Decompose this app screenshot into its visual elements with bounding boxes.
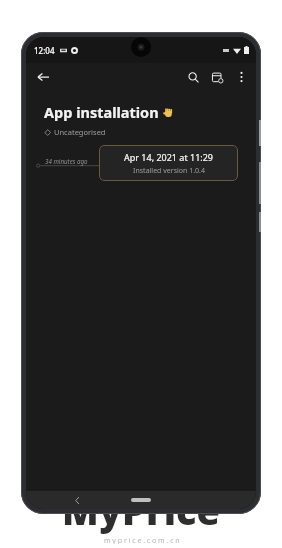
staticText: Apr 14, 2021 at 11:29 bbox=[124, 151, 213, 163]
staticText: 12:04 bbox=[34, 45, 55, 56]
button[interactable]: Apr 14, 2021 at 11:29 bbox=[99, 145, 238, 181]
button[interactable]: Back bbox=[70, 493, 84, 507]
button[interactable]: Back bbox=[32, 66, 54, 88]
staticText: MyPrice bbox=[62, 484, 221, 536]
staticText: Uncategorised bbox=[54, 127, 106, 137]
button[interactable]: More options bbox=[230, 66, 252, 88]
staticText: m y p r i c e . c o m . c n bbox=[104, 536, 180, 544]
staticText: App installation bbox=[44, 102, 159, 122]
staticText: Installed version 1.0.4 bbox=[133, 166, 205, 176]
button[interactable]: Search bbox=[182, 66, 204, 88]
button[interactable]: Calendar bbox=[206, 66, 228, 88]
button[interactable]: Home bbox=[128, 494, 154, 506]
staticText: 34 minutes ago bbox=[45, 157, 88, 165]
